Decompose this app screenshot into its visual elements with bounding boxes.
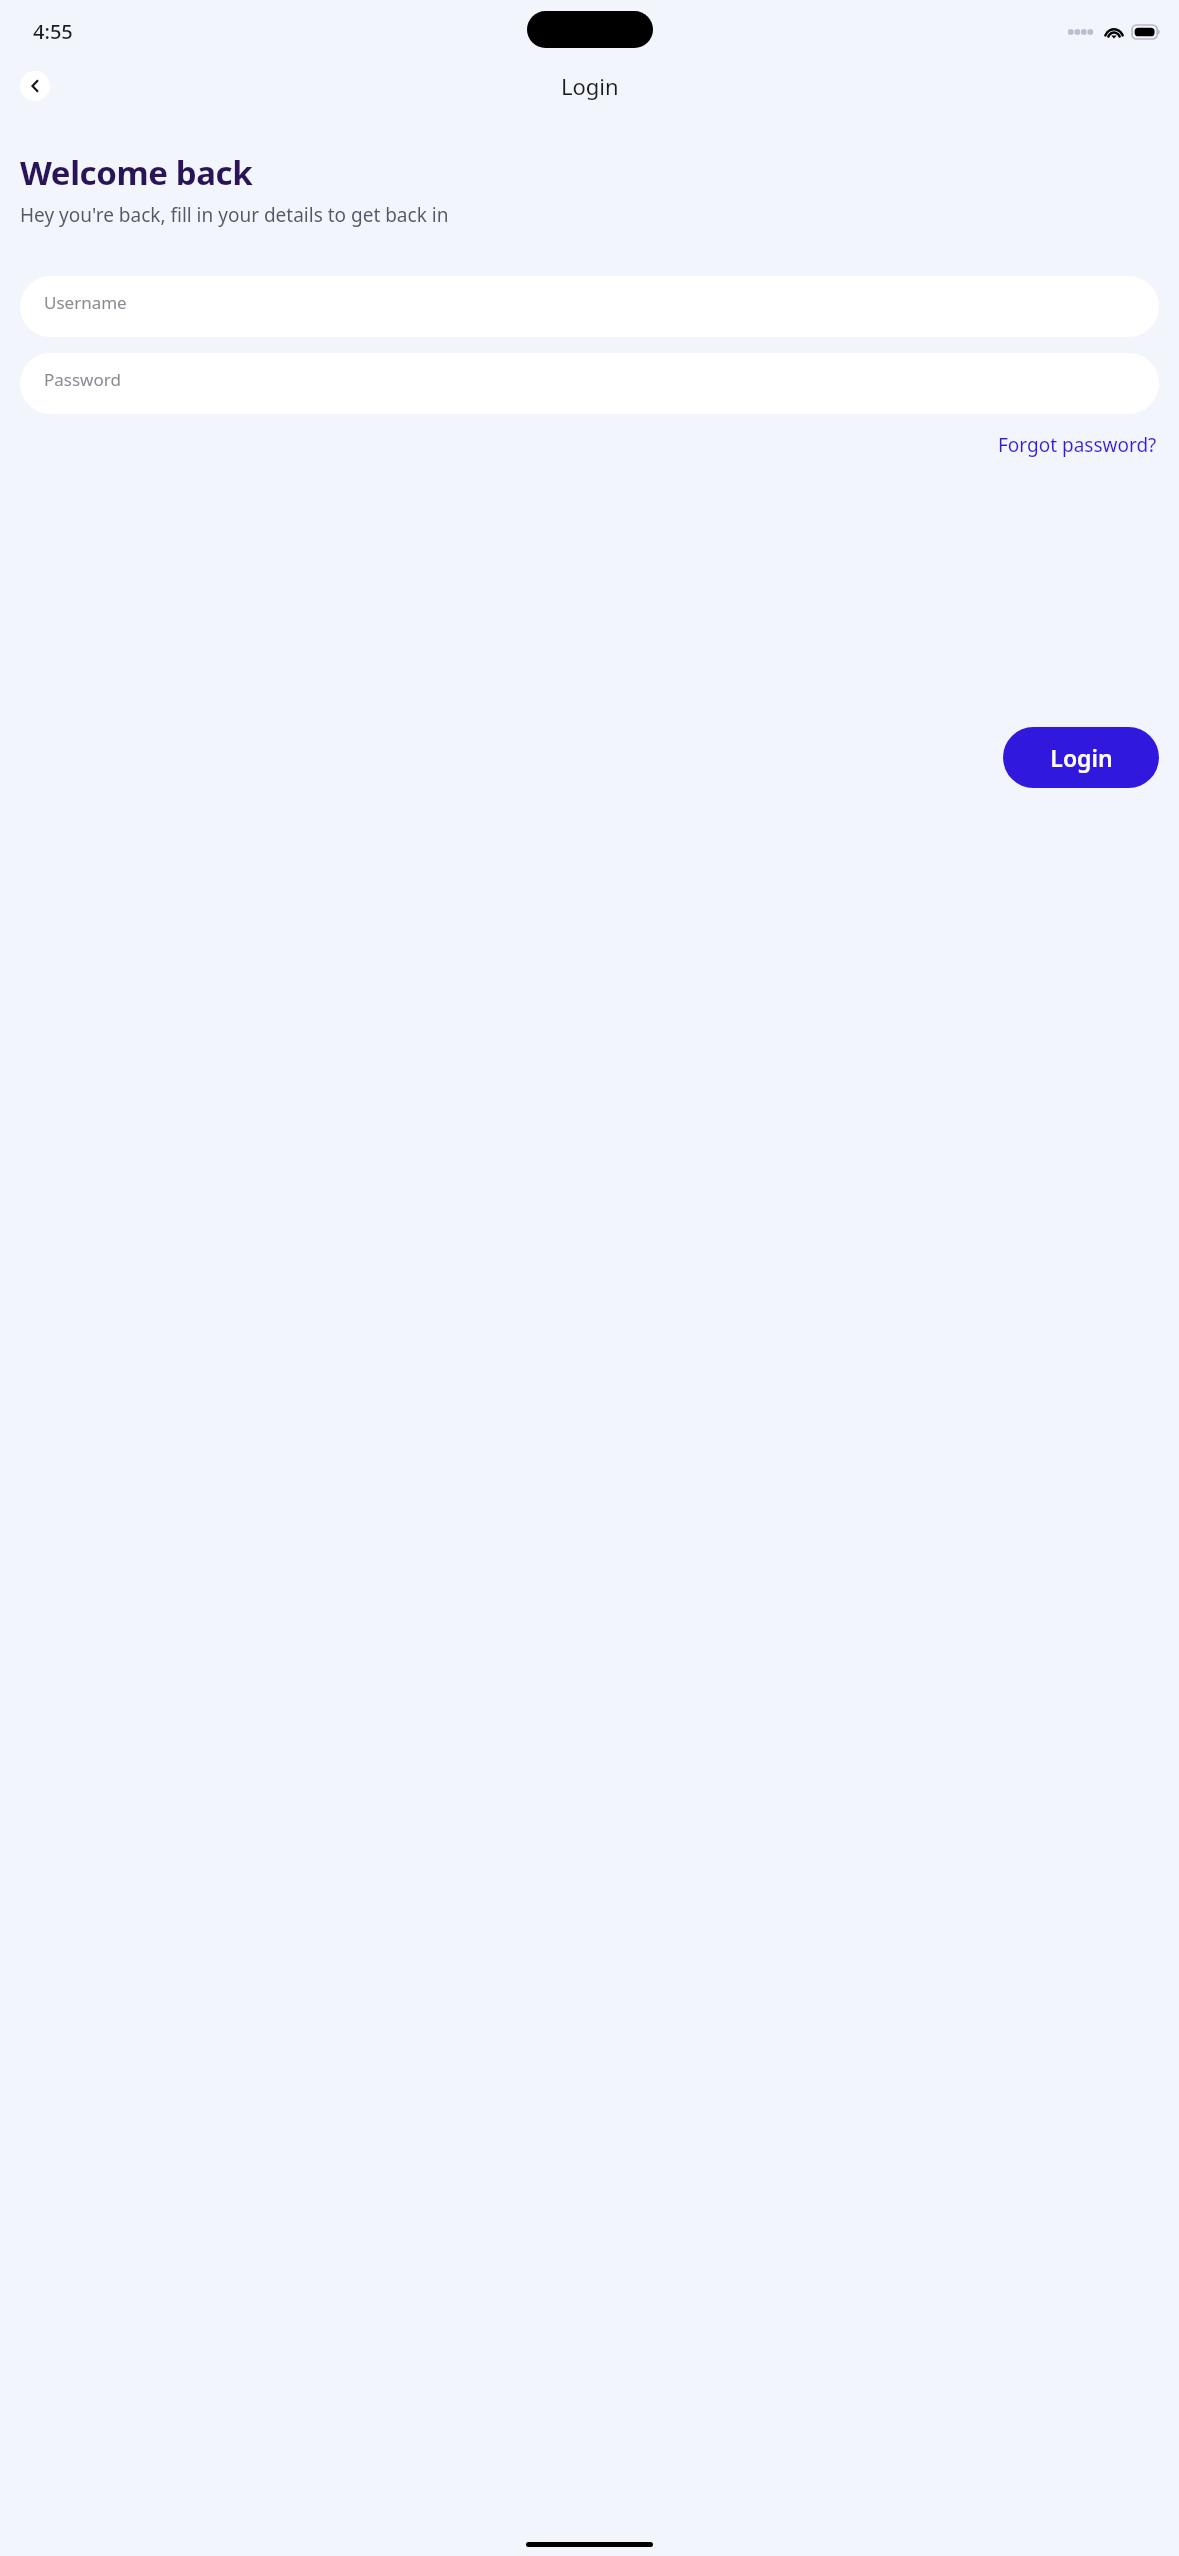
staticText: 4:55 [33, 18, 73, 45]
button[interactable]: Forgot password? [996, 430, 1159, 460]
button[interactable]: Back [20, 71, 50, 101]
staticText: Username [44, 291, 127, 314]
button[interactable]: Login [1003, 727, 1159, 788]
staticText: Hey you're back, fill in your details to… [20, 202, 449, 228]
button[interactable]: Password [20, 353, 1159, 414]
staticText: Welcome back [20, 150, 253, 195]
staticText: Password [44, 368, 121, 391]
staticText: Login [1050, 742, 1113, 773]
staticText: Login [561, 71, 619, 101]
button[interactable]: Username [20, 276, 1159, 337]
